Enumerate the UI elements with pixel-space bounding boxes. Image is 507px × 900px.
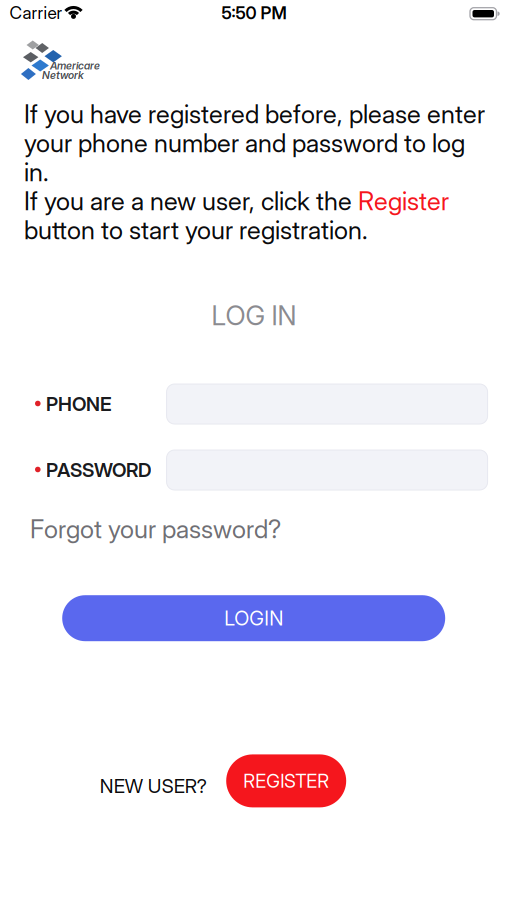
staticText: your phone number and password to log	[24, 128, 465, 158]
staticText: button to start your registration.	[24, 215, 368, 245]
staticText: PHONE	[46, 392, 112, 416]
staticText: If you have registered before, please en…	[24, 99, 485, 129]
staticText: REGISTER	[243, 770, 329, 792]
button[interactable]: Forgot your password?	[30, 514, 281, 544]
staticText: Forgot your password?	[30, 514, 281, 544]
staticText: Network	[42, 69, 84, 82]
staticText: LOGIN	[224, 606, 283, 630]
staticText: in.	[24, 157, 49, 187]
staticText: If you are a new user, click the	[24, 186, 358, 216]
staticText: NEW USER?	[100, 774, 207, 798]
staticText: Register	[358, 186, 449, 216]
staticText: 5:50 PM	[221, 2, 286, 23]
staticText: Americare	[50, 59, 100, 72]
staticText: LOG IN	[211, 299, 296, 332]
button[interactable]: LOGIN	[62, 595, 445, 641]
button[interactable]: REGISTER	[226, 754, 346, 807]
staticText: PASSWORD	[46, 458, 151, 482]
staticText: Carrier	[9, 2, 62, 23]
